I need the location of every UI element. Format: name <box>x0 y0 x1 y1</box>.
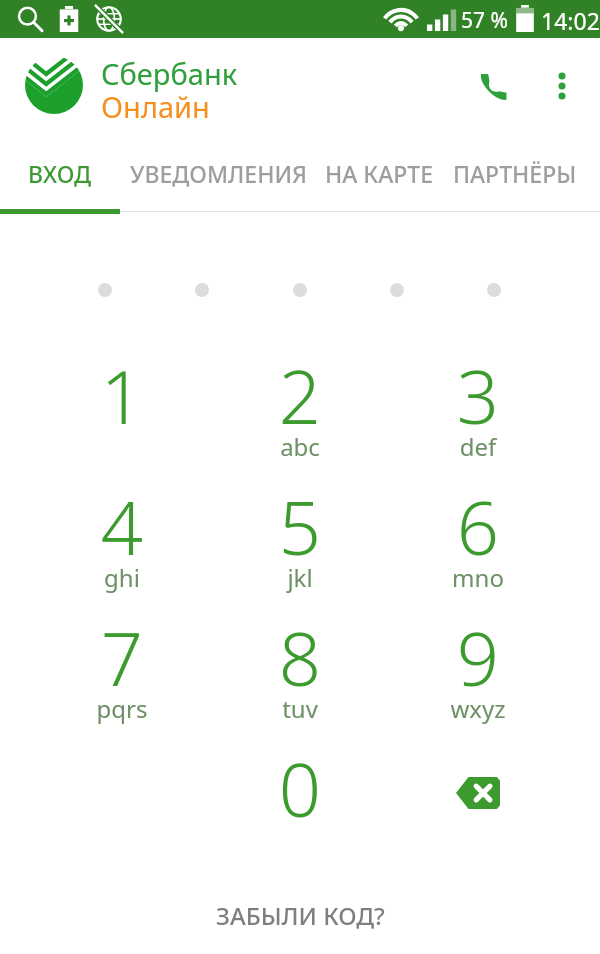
button[interactable]: 8 <box>240 593 360 724</box>
staticText: ВХОД <box>28 158 92 189</box>
button[interactable]: УВЕДОМЛЕНИЯ <box>120 138 317 209</box>
staticText: 7 <box>62 607 182 708</box>
button[interactable]: 1 <box>62 331 182 462</box>
staticText: 9 <box>418 607 538 708</box>
staticText: 6 <box>418 476 538 577</box>
button[interactable]: 6 <box>418 462 538 593</box>
staticText: ghi <box>62 561 182 594</box>
staticText: pqrs <box>62 692 182 725</box>
staticText: Онлайн <box>101 87 210 126</box>
button[interactable]: ЗАБЫЛИ КОД? <box>192 889 409 942</box>
staticText: wxyz <box>418 692 538 725</box>
staticText: 1 <box>62 345 182 446</box>
staticText: Сбербанк <box>101 54 238 93</box>
staticText: 5 <box>240 476 360 577</box>
button[interactable]: НА КАРТЕ <box>319 138 439 209</box>
staticText: ПАРТНЁРЫ <box>453 158 577 189</box>
staticText: def <box>418 430 538 463</box>
staticText: ЗАБЫЛИ КОД? <box>216 899 385 932</box>
button[interactable]: Call <box>463 56 523 116</box>
staticText: 4 <box>62 476 182 577</box>
button[interactable]: 7 <box>62 593 182 724</box>
staticText: 3 <box>418 345 538 446</box>
button[interactable]: ПАРТНЁРЫ <box>444 138 586 209</box>
button[interactable]: 4 <box>62 462 182 593</box>
button[interactable]: More options <box>537 61 587 111</box>
button[interactable]: ВХОД <box>0 138 120 209</box>
staticText: tuv <box>240 692 360 725</box>
button[interactable]: 3 <box>418 331 538 462</box>
button[interactable]: 9 <box>418 593 538 724</box>
staticText: 0 <box>240 738 360 839</box>
staticText: 14:02 <box>541 5 600 36</box>
staticText: УВЕДОМЛЕНИЯ <box>130 158 308 189</box>
button[interactable]: Backspace <box>423 743 533 843</box>
button[interactable]: 2 <box>240 331 360 462</box>
staticText: mno <box>418 561 538 594</box>
staticText: 57 % <box>461 6 508 35</box>
button[interactable]: 0 <box>240 724 360 855</box>
staticText: 2 <box>240 345 360 446</box>
staticText: НА КАРТЕ <box>325 158 433 189</box>
button[interactable]: 5 <box>240 462 360 593</box>
staticText: abc <box>240 430 360 463</box>
staticText: jkl <box>240 561 360 594</box>
staticText: 8 <box>240 607 360 708</box>
